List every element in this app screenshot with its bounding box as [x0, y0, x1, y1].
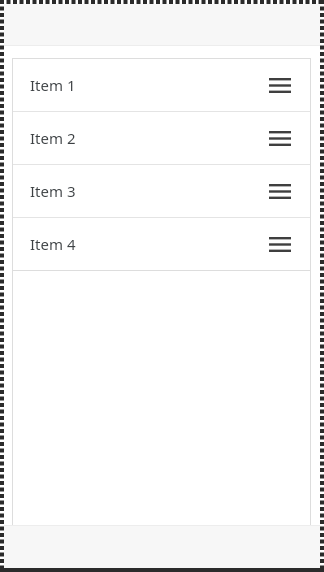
staticText: Item 1	[30, 75, 76, 95]
button[interactable]: Item 1	[12, 59, 311, 111]
staticText: Item 4	[30, 234, 76, 254]
staticText: Item 3	[30, 181, 76, 201]
button[interactable]: Reorder Item 4	[267, 231, 293, 257]
button[interactable]: Reorder Item 1	[267, 72, 293, 98]
button[interactable]: Reorder Item 3	[267, 178, 293, 204]
staticText: Item 2	[30, 128, 76, 148]
button[interactable]: Item 4	[12, 218, 311, 270]
button[interactable]: Reorder Item 2	[267, 125, 293, 151]
button[interactable]: Item 2	[12, 112, 311, 164]
button[interactable]: Item 3	[12, 165, 311, 217]
